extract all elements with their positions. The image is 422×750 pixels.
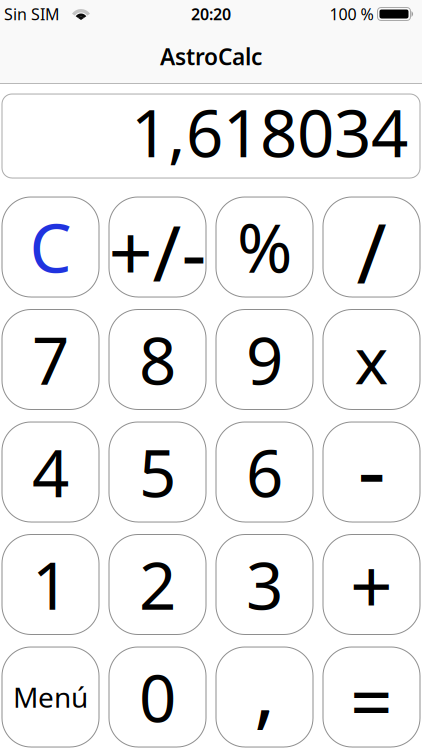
button[interactable]: 1 bbox=[2, 534, 99, 634]
button[interactable]: 4 bbox=[2, 422, 99, 522]
staticText: , bbox=[254, 636, 275, 742]
button[interactable]: 3 bbox=[216, 534, 313, 634]
staticText: 6 bbox=[246, 429, 283, 515]
button[interactable]: C bbox=[2, 197, 99, 297]
staticText: 5 bbox=[139, 429, 176, 515]
staticText: x bbox=[354, 317, 388, 402]
staticText: 3 bbox=[246, 541, 283, 628]
staticText: = bbox=[350, 650, 393, 750]
button[interactable]: 8 bbox=[109, 309, 206, 409]
button[interactable]: +/- bbox=[109, 197, 206, 297]
button[interactable]: = bbox=[323, 647, 420, 747]
button[interactable]: 2 bbox=[109, 534, 206, 634]
staticText: Menú bbox=[13, 678, 88, 716]
staticText: AstroCalc bbox=[160, 41, 262, 71]
button[interactable]: , bbox=[216, 647, 313, 747]
button[interactable]: / bbox=[323, 197, 420, 297]
button[interactable]: 0 bbox=[109, 647, 206, 747]
staticText: 4 bbox=[32, 429, 69, 515]
staticText: 1 bbox=[32, 541, 69, 628]
staticText: + bbox=[350, 535, 393, 634]
button[interactable]: 9 bbox=[216, 309, 313, 409]
staticText: 7 bbox=[32, 316, 69, 403]
staticText: - bbox=[357, 409, 385, 526]
button[interactable]: Menú bbox=[2, 647, 99, 747]
button[interactable]: 6 bbox=[216, 422, 313, 522]
staticText: +/- bbox=[108, 200, 206, 303]
staticText: 2 bbox=[139, 541, 176, 628]
staticText: 0 bbox=[139, 654, 176, 740]
staticText: C bbox=[29, 203, 71, 291]
staticText: % bbox=[237, 203, 292, 291]
staticText: 20:20 bbox=[191, 3, 231, 25]
button[interactable]: + bbox=[323, 534, 420, 634]
staticText: 1,618034 bbox=[131, 89, 408, 175]
button[interactable]: - bbox=[323, 422, 420, 522]
button[interactable]: x bbox=[323, 309, 420, 409]
staticText: Sin SIM bbox=[4, 3, 60, 25]
staticText: 9 bbox=[246, 316, 283, 403]
staticText: / bbox=[356, 198, 386, 306]
button[interactable]: 5 bbox=[109, 422, 206, 522]
staticText: 8 bbox=[139, 316, 176, 403]
button[interactable]: 7 bbox=[2, 309, 99, 409]
button[interactable]: % bbox=[216, 197, 313, 297]
staticText: 100 % bbox=[329, 3, 373, 25]
